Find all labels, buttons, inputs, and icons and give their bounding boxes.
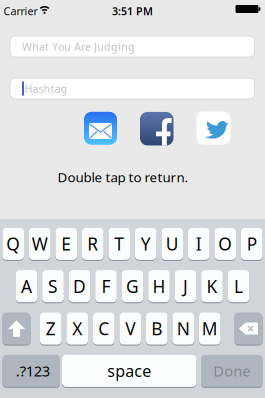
staticText: W — [32, 232, 48, 255]
button[interactable]: J — [175, 270, 196, 303]
staticText: Double tap to return. — [57, 168, 188, 186]
staticText: P — [247, 232, 257, 255]
staticText: Z — [46, 317, 56, 340]
button[interactable]: C — [93, 312, 114, 345]
staticText: D — [73, 275, 86, 298]
staticText: space — [107, 360, 151, 381]
button[interactable]: V — [119, 312, 141, 345]
button[interactable]: Y — [135, 227, 156, 260]
staticText: O — [218, 232, 232, 255]
button[interactable]: Q — [2, 227, 24, 260]
staticText: .?123 — [16, 361, 50, 381]
button[interactable]: Hashtag — [10, 78, 254, 99]
button[interactable]: X — [66, 312, 88, 345]
button[interactable]: L — [228, 270, 249, 303]
button[interactable]: Delete — [234, 312, 262, 345]
staticText: T — [114, 232, 124, 255]
button[interactable]: D — [69, 270, 90, 303]
button[interactable]: Done — [201, 354, 262, 387]
staticText: U — [166, 232, 179, 255]
staticText: 3:51 PM — [112, 4, 153, 18]
button[interactable]: T — [108, 227, 130, 260]
button[interactable]: U — [161, 227, 183, 260]
button[interactable]: G — [122, 270, 143, 303]
button[interactable]: K — [201, 270, 223, 303]
staticText: J — [183, 275, 188, 298]
staticText: K — [206, 275, 217, 298]
staticText: M — [202, 317, 218, 340]
button[interactable]: W — [29, 227, 50, 260]
staticText: C — [98, 317, 109, 340]
staticText: X — [72, 317, 82, 340]
staticText: F — [101, 275, 110, 298]
button[interactable]: I — [188, 227, 209, 260]
staticText: V — [125, 317, 135, 340]
staticText: Done — [213, 361, 250, 381]
button[interactable]: Share on Facebook — [140, 112, 173, 145]
staticText: H — [152, 275, 165, 298]
button[interactable]: What You Are Judging — [10, 36, 254, 57]
staticText: Q — [6, 232, 20, 255]
staticText: What You Are Judging — [22, 39, 135, 54]
button[interactable]: Share on Twitter — [196, 111, 230, 144]
button[interactable]: E — [55, 227, 77, 260]
staticText: I — [196, 232, 202, 255]
staticText: G — [126, 275, 139, 298]
button[interactable]: Share by Mail — [84, 112, 117, 145]
staticText: L — [234, 275, 243, 298]
staticText: A — [21, 275, 32, 298]
button[interactable]: N — [172, 312, 194, 345]
staticText: Hashtag — [24, 81, 67, 96]
button[interactable]: H — [148, 270, 170, 303]
staticText: N — [177, 317, 190, 340]
button[interactable]: O — [214, 227, 236, 260]
button[interactable]: Z — [40, 312, 61, 345]
button[interactable]: S — [42, 270, 64, 303]
staticText: B — [151, 317, 162, 340]
button[interactable]: space — [62, 354, 196, 387]
button[interactable]: P — [241, 227, 262, 260]
staticText: Y — [141, 232, 151, 255]
button[interactable]: F — [95, 270, 117, 303]
staticText: S — [48, 275, 58, 298]
button[interactable]: A — [16, 270, 37, 303]
staticText: E — [61, 232, 71, 255]
button[interactable]: R — [82, 227, 103, 260]
button[interactable]: M — [199, 312, 220, 345]
button[interactable]: B — [146, 312, 167, 345]
staticText: Carrier — [3, 4, 37, 18]
staticText: R — [87, 232, 98, 255]
button[interactable]: Shift — [2, 312, 30, 345]
button[interactable]: Numbers — [2, 354, 60, 387]
